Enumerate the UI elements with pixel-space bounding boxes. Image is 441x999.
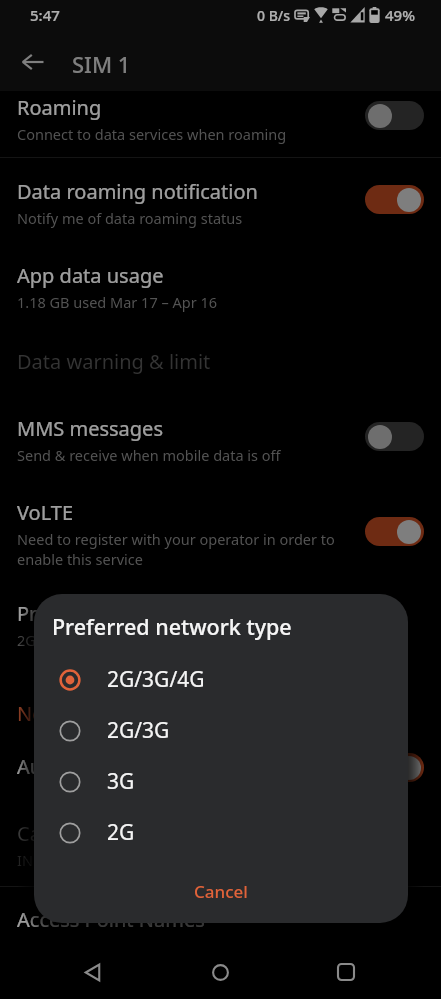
staticText: 2G/3G/4G [17, 630, 85, 650]
staticText: Automatically select network [17, 753, 288, 780]
staticText: MMS messages [17, 415, 163, 442]
button[interactable]: Recent apps [320, 946, 372, 998]
staticText: 2G [107, 818, 135, 847]
staticText: 2G/3G [107, 716, 170, 745]
staticText: SIM 1 [72, 49, 131, 79]
staticText: INDIA [17, 850, 58, 870]
staticText: 0 B/s [257, 6, 290, 25]
staticText: Need to register with your operator in o… [17, 529, 335, 569]
staticText: VoLTE [17, 499, 74, 526]
staticText: 5:47 [30, 5, 60, 25]
staticText: Network operators [17, 700, 195, 727]
button[interactable]: 2G [34, 807, 408, 857]
button[interactable]: Network operators [0, 700, 441, 727]
button[interactable]: 3G [34, 756, 408, 806]
staticText: 49% [385, 5, 415, 25]
button[interactable]: Data roaming notification [0, 178, 441, 228]
staticText: 1.18 GB used Mar 17 – Apr 16 [17, 292, 218, 312]
staticText: Notify me of data roaming status [17, 208, 243, 228]
button[interactable]: Home [194, 946, 246, 998]
staticText: 2G/3G/4G [107, 665, 205, 694]
button[interactable]: Carrier [0, 820, 441, 870]
staticText: Preferred network type [17, 600, 236, 627]
button[interactable]: 2G/3G/4G [34, 654, 408, 704]
staticText: Access Point Names [17, 906, 205, 933]
staticText: Send & receive when mobile data is off [17, 445, 281, 465]
button[interactable]: Access Point Names [0, 906, 441, 933]
staticText: Cancel [194, 880, 248, 903]
staticText: Preferred network type [52, 612, 292, 641]
button[interactable]: VoLTE [0, 499, 441, 569]
button[interactable]: Automatically select network [0, 753, 441, 780]
button[interactable]: App data usage [0, 262, 441, 312]
button[interactable]: Back [66, 946, 118, 998]
button[interactable]: 2G/3G [34, 705, 408, 755]
button[interactable]: Preferred network type [0, 600, 441, 650]
staticText: 3G [107, 767, 135, 796]
staticText: App data usage [17, 262, 164, 289]
staticText: Connect to data services when roaming [17, 124, 287, 144]
staticText: Data warning & limit [17, 348, 211, 375]
button[interactable]: Data warning & limit [0, 348, 441, 375]
button[interactable]: MMS messages [0, 415, 441, 465]
button[interactable]: Cancel [164, 869, 278, 914]
staticText: Roaming [17, 94, 102, 121]
button[interactable]: Navigate up [7, 36, 59, 88]
staticText: Carrier [17, 820, 83, 847]
button[interactable]: Roaming [0, 94, 441, 144]
staticText: Data roaming notification [17, 178, 258, 205]
